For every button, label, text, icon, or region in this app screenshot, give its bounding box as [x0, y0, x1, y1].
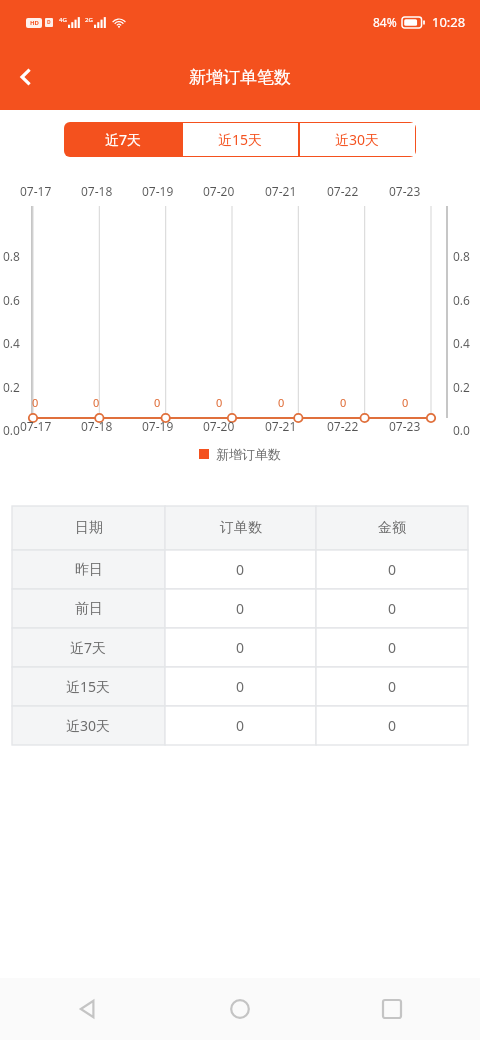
- staticText: 近15天: [66, 677, 111, 696]
- staticText: 07-17: [20, 418, 52, 434]
- staticText: 07-18: [81, 183, 113, 199]
- staticText: 0: [388, 638, 397, 657]
- staticText: 0: [216, 395, 223, 410]
- staticText: HD: [30, 19, 39, 27]
- button[interactable]: Back: [64, 985, 112, 1033]
- staticText: 0: [93, 395, 100, 410]
- staticText: 0.0: [3, 422, 20, 438]
- staticText: 0: [278, 395, 285, 410]
- staticText: 0.2: [3, 379, 20, 395]
- staticText: 07-17: [20, 183, 52, 199]
- staticText: 07-21: [265, 418, 297, 434]
- staticText: 07-21: [265, 183, 297, 199]
- button[interactable]: 前日: [12, 589, 468, 628]
- staticText: 07-20: [203, 183, 235, 199]
- staticText: 0.4: [453, 335, 470, 351]
- staticText: 07-18: [81, 418, 113, 434]
- staticText: 0: [154, 395, 161, 410]
- button[interactable]: Back: [0, 51, 52, 103]
- staticText: 0: [340, 395, 347, 410]
- staticText: 07-23: [389, 183, 421, 199]
- staticText: 10:28: [432, 13, 466, 31]
- button[interactable]: Home: [216, 985, 264, 1033]
- staticText: 0: [388, 716, 397, 735]
- staticText: 0: [236, 677, 245, 696]
- staticText: 0: [388, 677, 397, 696]
- staticText: 07-22: [327, 418, 359, 434]
- staticText: 0.8: [453, 248, 470, 264]
- button[interactable]: 近15天: [12, 667, 468, 706]
- staticText: 07-22: [327, 183, 359, 199]
- staticText: 近7天: [105, 130, 142, 149]
- staticText: 0: [388, 560, 397, 579]
- staticText: 0: [236, 599, 245, 618]
- staticText: 近30天: [335, 130, 380, 149]
- staticText: 日期: [75, 519, 103, 537]
- staticText: D: [47, 19, 51, 26]
- button[interactable]: 昨日: [12, 550, 468, 589]
- staticText: 昨日: [75, 561, 103, 579]
- staticText: 0.2: [453, 379, 470, 395]
- staticText: 近15天: [218, 130, 263, 149]
- staticText: 0.6: [3, 292, 20, 308]
- button[interactable]: 近7天: [12, 628, 468, 667]
- button[interactable]: Recents: [368, 985, 416, 1033]
- staticText: 0.6: [453, 292, 470, 308]
- staticText: 0: [402, 395, 409, 410]
- staticText: 近7天: [70, 638, 107, 657]
- staticText: 0.4: [3, 335, 20, 351]
- staticText: 84%: [373, 14, 397, 30]
- staticText: 0.0: [453, 422, 470, 438]
- staticText: 近30天: [66, 716, 111, 735]
- staticText: 订单数: [220, 519, 262, 537]
- button[interactable]: 近30天: [299, 122, 416, 157]
- staticText: 07-20: [203, 418, 235, 434]
- staticText: 前日: [75, 600, 103, 618]
- staticText: 0: [236, 716, 245, 735]
- staticText: 金额: [378, 519, 406, 537]
- staticText: 0.8: [3, 248, 20, 264]
- staticText: 0: [236, 560, 245, 579]
- staticText: 2G: [85, 16, 93, 24]
- staticText: 07-23: [389, 418, 421, 434]
- staticText: 0: [388, 599, 397, 618]
- staticText: 4G: [59, 16, 67, 24]
- staticText: 0: [236, 638, 245, 657]
- button[interactable]: 日期: [12, 506, 468, 550]
- button[interactable]: 近7天: [64, 122, 182, 157]
- staticText: 07-19: [142, 183, 174, 199]
- staticText: 07-19: [142, 418, 174, 434]
- staticText: 0: [32, 395, 39, 410]
- staticText: 新增订单数: [216, 446, 281, 462]
- button[interactable]: 近30天: [12, 706, 468, 745]
- staticText: 新增订单笔数: [189, 67, 291, 88]
- button[interactable]: 近15天: [182, 122, 299, 157]
